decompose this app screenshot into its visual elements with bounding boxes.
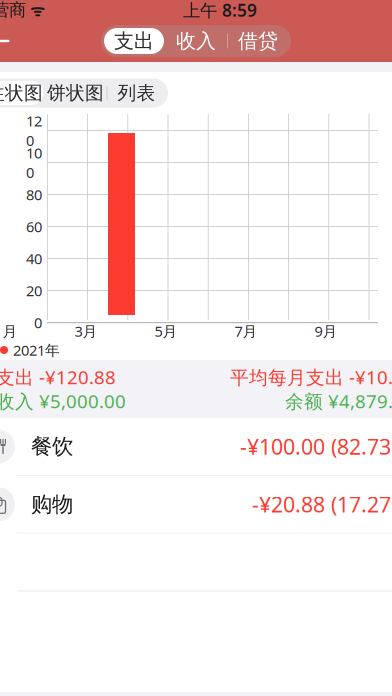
- staticText: 余额 ¥4,879.12: [285, 389, 392, 413]
- staticText: 7月: [234, 321, 257, 341]
- button[interactable]: 饼状图: [45, 79, 106, 107]
- staticText: 80: [26, 185, 42, 204]
- staticText: 餐饮: [31, 433, 73, 460]
- staticText: 40: [26, 249, 42, 268]
- staticText: 平均每月支出 -¥10.07: [230, 365, 392, 389]
- staticText: 总支出 -¥120.88: [0, 365, 116, 389]
- staticText: 100: [26, 143, 42, 182]
- staticText: -¥20.88 (17.27%): [252, 490, 392, 518]
- button[interactable]: 柱状图: [0, 79, 45, 107]
- button[interactable]: 2021年: [0, 74, 43, 112]
- staticText: -¥100.00 (82.73%): [240, 432, 392, 461]
- staticText: 购物: [31, 491, 73, 517]
- button[interactable]: 支出: [103, 26, 165, 56]
- staticText: 运营商: [0, 0, 26, 21]
- staticText: 9月: [314, 321, 337, 341]
- button[interactable]: 收入: [165, 26, 227, 56]
- button[interactable]: 返回: [0, 22, 13, 60]
- staticText: 柱状图: [0, 81, 43, 104]
- staticText: 60: [26, 217, 42, 236]
- button[interactable]: 列表: [106, 79, 167, 107]
- staticText: 2021年: [13, 340, 60, 360]
- staticText: 总收入 ¥5,000.00: [0, 389, 126, 413]
- staticText: 5月: [154, 321, 177, 341]
- staticText: 2021年: [0, 80, 43, 106]
- staticText: ᯤ: [26, 0, 45, 21]
- staticText: 上午 8:59: [183, 0, 257, 21]
- staticText: 饼状图: [47, 81, 104, 104]
- button[interactable]: 借贷: [227, 26, 289, 56]
- staticText: 列表: [117, 81, 155, 104]
- staticText: 1月: [0, 321, 17, 341]
- staticText: 借贷: [238, 29, 278, 53]
- staticText: 支出: [114, 29, 154, 53]
- button[interactable]: 购物: [0, 476, 392, 534]
- staticText: 20: [26, 281, 42, 300]
- staticText: 120: [26, 111, 42, 150]
- button[interactable]: 餐饮: [0, 418, 392, 476]
- staticText: 0: [34, 313, 42, 332]
- staticText: 收入: [176, 29, 216, 53]
- staticText: 3月: [74, 321, 97, 341]
